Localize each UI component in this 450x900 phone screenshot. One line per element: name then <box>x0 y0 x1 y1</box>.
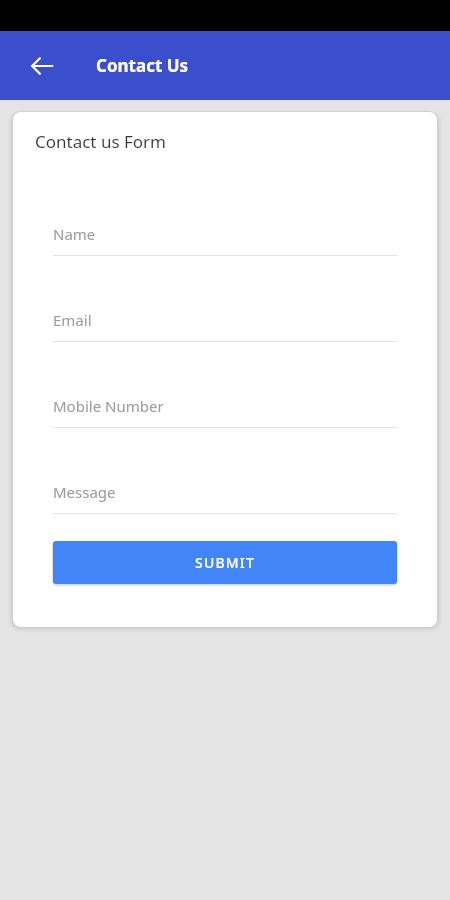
button[interactable]: Email <box>53 308 397 342</box>
staticText: Mobile Number <box>53 396 164 416</box>
button[interactable]: Mobile Number <box>53 394 397 428</box>
staticText: Name <box>53 224 96 244</box>
staticText: SUBMIT <box>195 553 256 572</box>
staticText: Contact us Form <box>35 130 167 153</box>
button[interactable]: Message <box>53 480 397 514</box>
button[interactable]: Name <box>53 222 397 256</box>
staticText: Message <box>53 482 116 502</box>
staticText: Contact Us <box>96 54 189 77</box>
staticText: Email <box>53 310 92 330</box>
button[interactable]: SUBMIT <box>53 541 397 584</box>
button[interactable]: Back <box>22 46 62 86</box>
